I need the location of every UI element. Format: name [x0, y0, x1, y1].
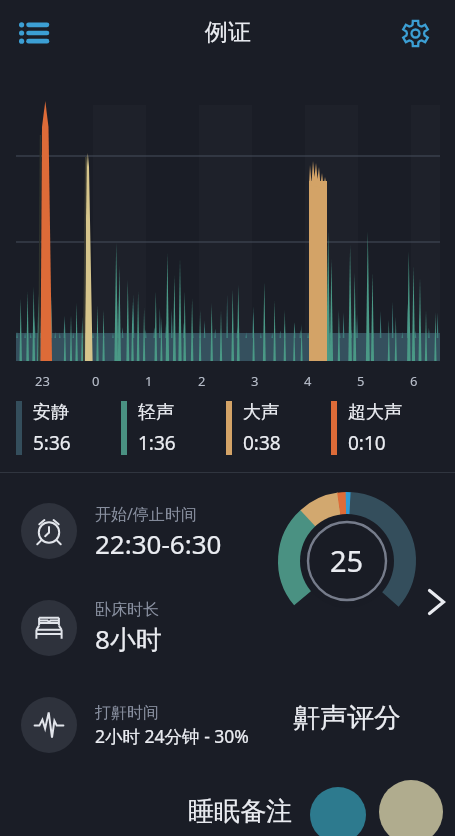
staticText: 鼾声评分: [293, 701, 401, 735]
staticText: 23: [35, 372, 50, 390]
staticText: 超大声: [348, 401, 402, 424]
staticText: 大声: [243, 401, 279, 424]
staticText: 1:36: [138, 430, 176, 455]
staticText: 打鼾时间: [95, 703, 159, 723]
button[interactable]: Settings: [393, 11, 437, 55]
staticText: 1: [145, 372, 153, 390]
button[interactable]: 卧床时长: [21, 600, 162, 656]
staticText: 3: [251, 372, 259, 390]
button[interactable]: 安静: [16, 401, 71, 455]
staticText: 6: [410, 372, 418, 390]
staticText: 2: [198, 372, 206, 390]
staticText: 0:10: [348, 430, 386, 455]
staticText: 2小时 24分钟 - 30%: [95, 724, 249, 748]
button[interactable]: Next: [418, 572, 454, 632]
button[interactable]: 超大声: [331, 401, 402, 455]
staticText: 卧床时长: [95, 600, 159, 620]
staticText: 22:30-6:30: [95, 526, 222, 559]
staticText: 0:38: [243, 430, 281, 455]
staticText: 5: [357, 372, 365, 390]
staticText: 4: [304, 372, 312, 390]
button[interactable]: 大声: [226, 401, 281, 455]
staticText: 睡眠备注: [188, 795, 292, 828]
button[interactable]: Sleep note: [310, 787, 366, 836]
button[interactable]: Note: [379, 780, 443, 836]
button[interactable]: 轻声: [121, 401, 176, 455]
staticText: 轻声: [138, 401, 174, 424]
staticText: 5:36: [33, 430, 71, 455]
staticText: 安静: [33, 401, 69, 424]
staticText: 开始/停止时间: [95, 503, 197, 525]
staticText: 例证: [205, 18, 251, 47]
staticText: 8小时: [95, 621, 162, 656]
button[interactable]: 开始/停止时间: [21, 503, 222, 559]
button[interactable]: Menu: [8, 7, 60, 59]
button[interactable]: 打鼾时间: [21, 697, 249, 753]
staticText: 0: [92, 372, 100, 390]
staticText: 25: [330, 541, 364, 580]
